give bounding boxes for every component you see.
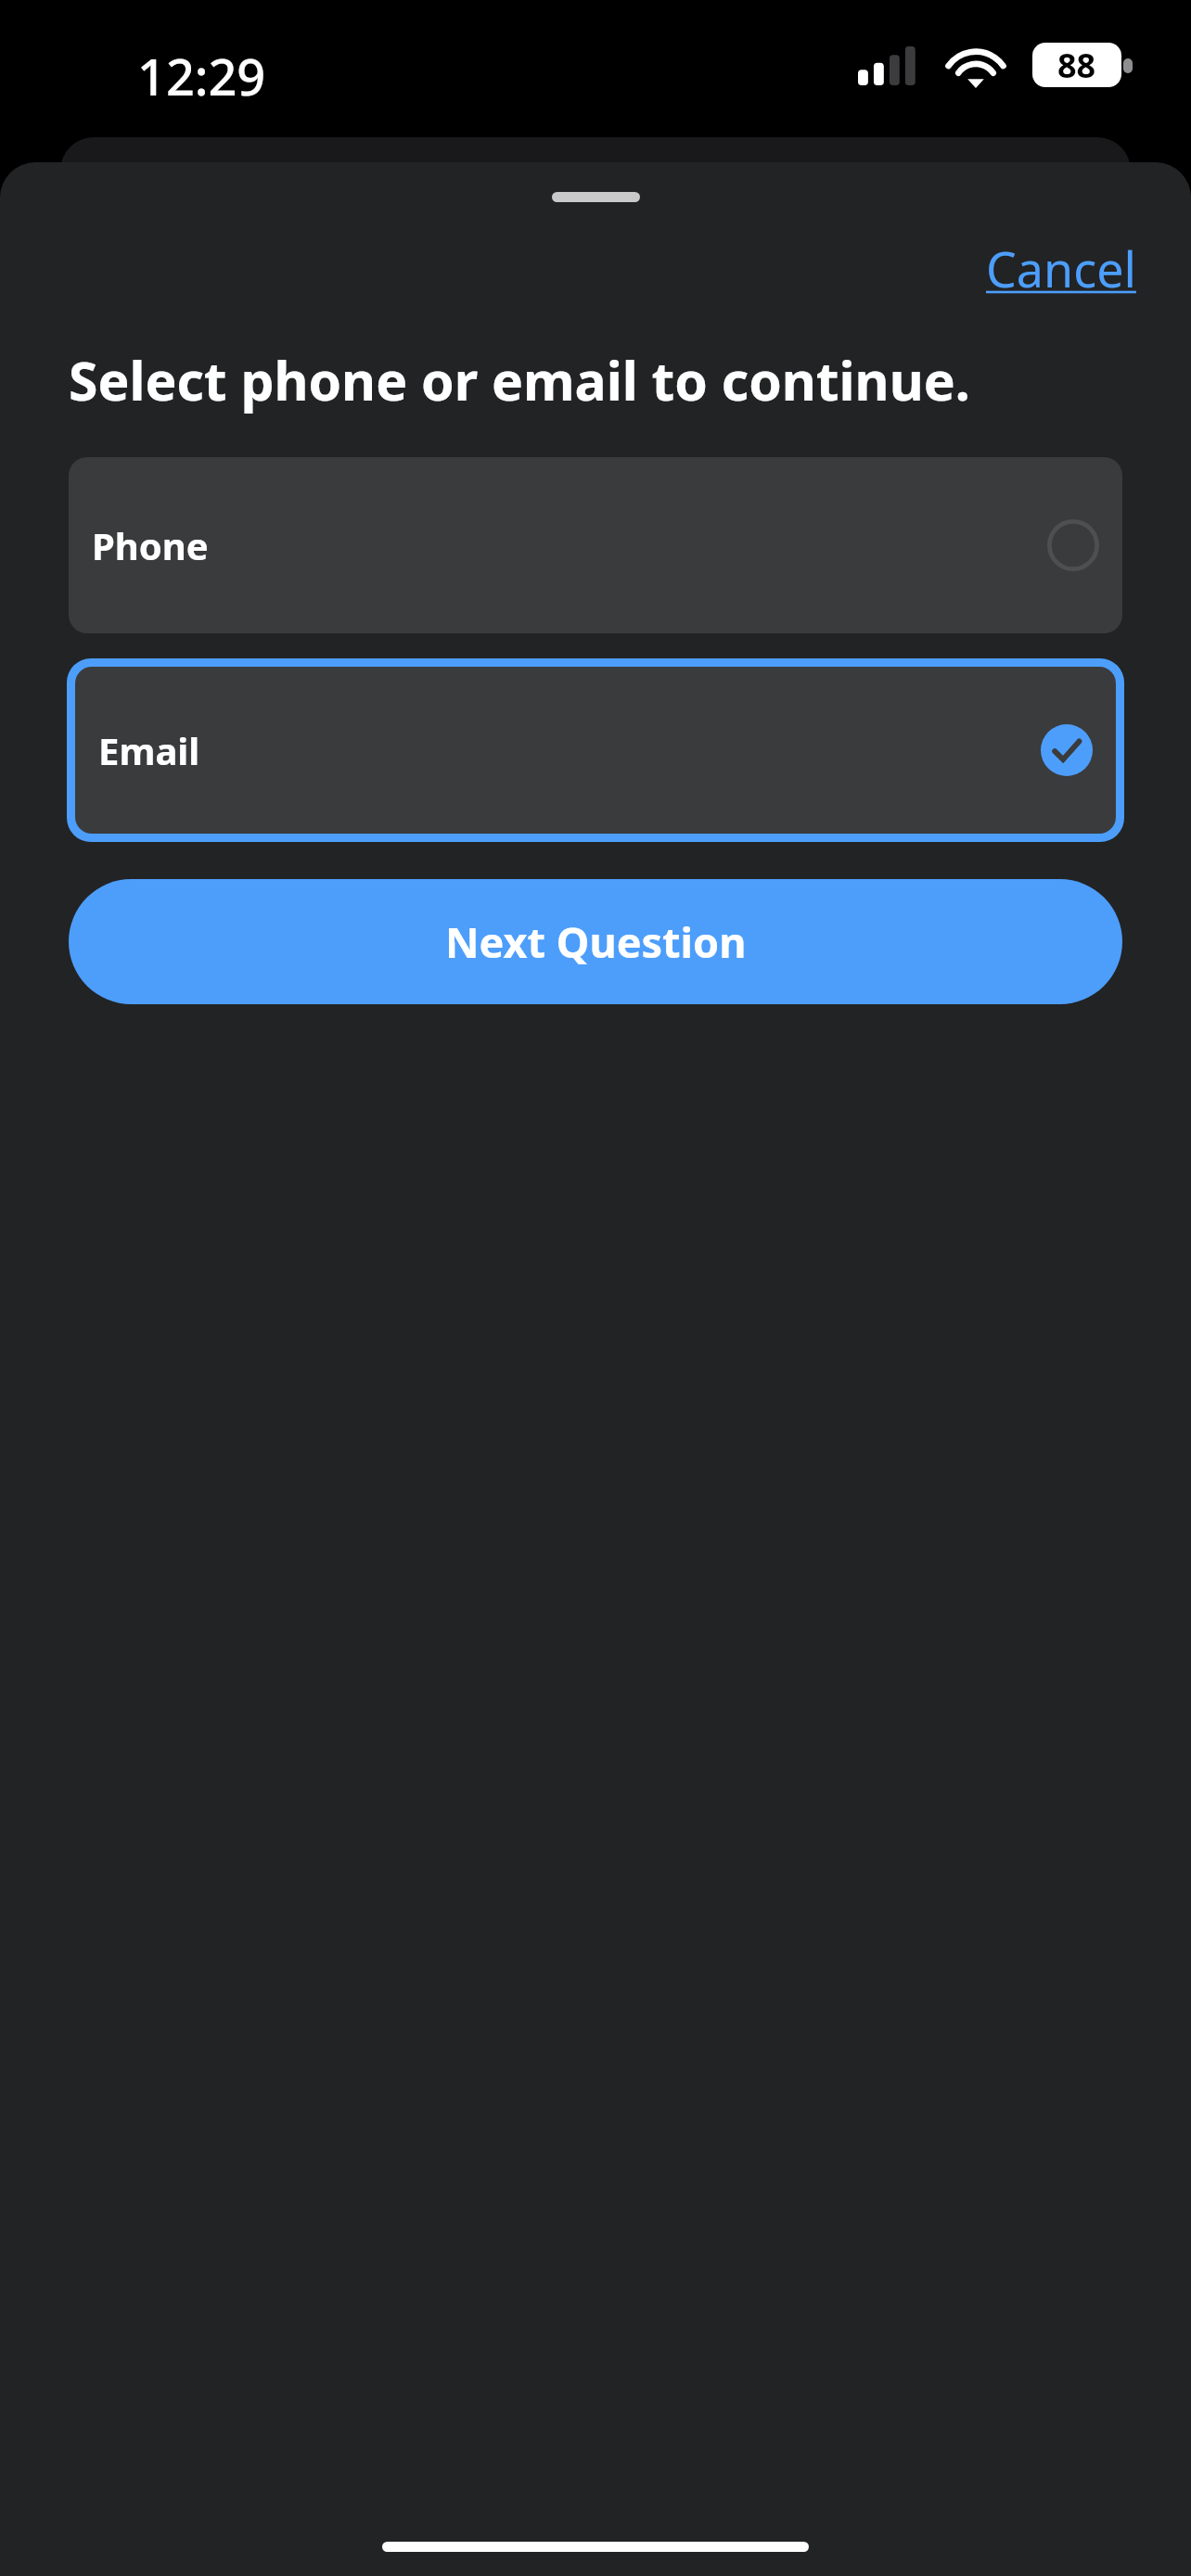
button[interactable]: Email [75, 667, 1116, 834]
button[interactable]: Phone [69, 457, 1122, 633]
button[interactable]: Next Question [69, 879, 1122, 1004]
other: Selected [1041, 724, 1093, 776]
button[interactable]: Cancel [931, 230, 1191, 307]
staticText: 88 [1057, 43, 1096, 87]
staticText: Phone [92, 520, 209, 570]
staticText: Next Question [445, 913, 747, 970]
staticText: 12:29 [137, 42, 266, 110]
staticText: Select phone or email to continue. [69, 344, 970, 416]
staticText: Cancel [986, 236, 1136, 301]
other: Not selected [1047, 519, 1099, 571]
staticText: Email [98, 725, 200, 775]
